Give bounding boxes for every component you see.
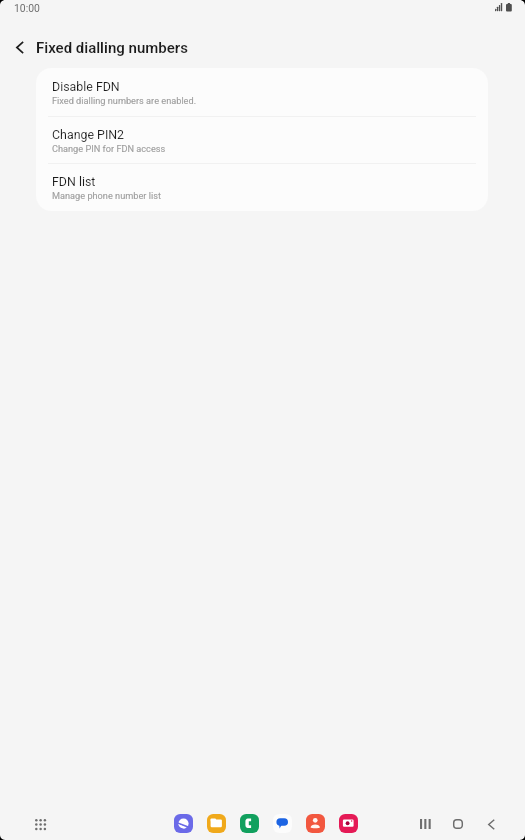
button[interactable]: Recent apps	[412, 811, 438, 837]
button[interactable]: Internet	[174, 814, 193, 833]
button[interactable]: Home	[445, 811, 471, 837]
staticText: 10:00	[14, 2, 40, 14]
staticText: Fixed dialling numbers	[36, 39, 188, 57]
button[interactable]: Contacts	[306, 814, 325, 833]
staticText: Fixed dialling numbers are enabled.	[52, 95, 197, 106]
staticText: FDN list	[52, 174, 96, 189]
button[interactable]: FDN list	[36, 163, 488, 211]
button[interactable]: Change PIN2	[36, 116, 488, 164]
staticText: Change PIN2	[52, 127, 125, 142]
staticText: Change PIN for FDN access	[52, 143, 166, 154]
button[interactable]: My Files	[207, 814, 226, 833]
button[interactable]: Navigate up	[4, 31, 36, 63]
staticText: Manage phone number list	[52, 190, 161, 201]
button[interactable]: Back	[478, 811, 504, 837]
staticText: Disable FDN	[52, 79, 120, 94]
button[interactable]: Messages	[273, 814, 292, 833]
button[interactable]: All apps	[28, 812, 52, 836]
button[interactable]: Phone	[240, 814, 259, 833]
button[interactable]: Camera	[339, 814, 358, 833]
button[interactable]: Disable FDN	[36, 68, 488, 116]
